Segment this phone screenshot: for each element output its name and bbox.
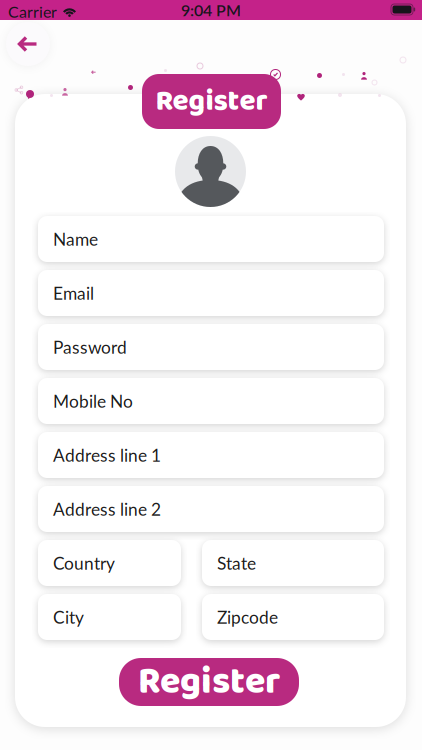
button[interactable]: Mobile No bbox=[38, 378, 384, 424]
button[interactable]: Zipcode bbox=[202, 594, 384, 640]
staticText: Register bbox=[138, 652, 280, 712]
staticText: Carrier bbox=[8, 2, 57, 21]
staticText: Name bbox=[53, 229, 98, 249]
button[interactable]: Address line 1 bbox=[38, 432, 384, 478]
staticText: City bbox=[53, 607, 84, 627]
staticText: Password bbox=[53, 337, 127, 357]
button[interactable]: Name bbox=[38, 216, 384, 262]
staticText: Register bbox=[155, 78, 267, 125]
button[interactable]: Country bbox=[38, 540, 181, 586]
button[interactable]: Address line 2 bbox=[38, 486, 384, 532]
staticText: Zipcode bbox=[217, 607, 278, 627]
button[interactable]: State bbox=[202, 540, 384, 586]
button[interactable]: Password bbox=[38, 324, 384, 370]
staticText: State bbox=[217, 553, 256, 573]
staticText: Email bbox=[53, 283, 94, 303]
button[interactable]: Register bbox=[119, 658, 299, 706]
staticText: 9:04 PM bbox=[181, 0, 241, 20]
button[interactable]: Email bbox=[38, 270, 384, 316]
staticText: Address line 1 bbox=[53, 445, 161, 465]
button[interactable]: City bbox=[38, 594, 181, 640]
staticText: Mobile No bbox=[53, 391, 133, 411]
button[interactable]: Back bbox=[5, 21, 51, 67]
staticText: Country bbox=[53, 553, 115, 573]
staticText: Address line 2 bbox=[53, 499, 161, 519]
